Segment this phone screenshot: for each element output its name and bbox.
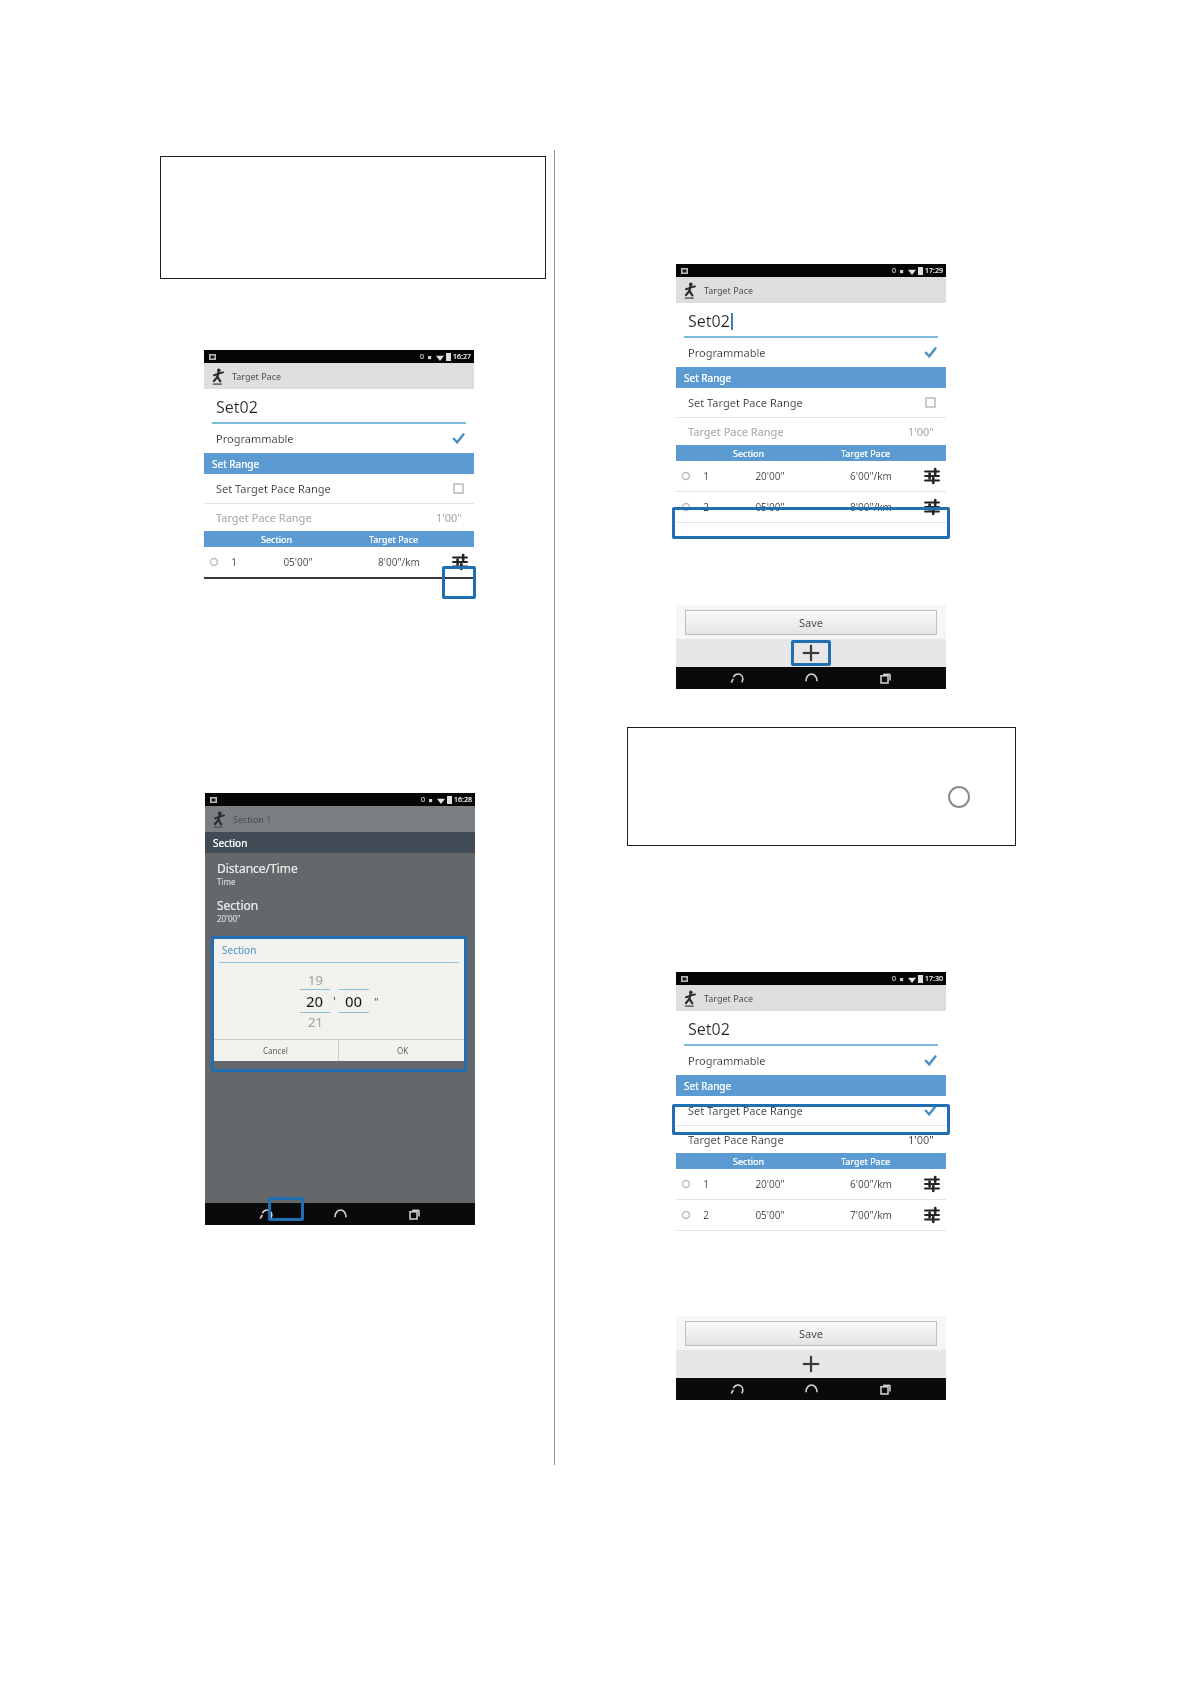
staticText: Target Pace Range xyxy=(688,1132,784,1147)
staticText: " xyxy=(374,994,379,1009)
staticText: Target Pace xyxy=(232,370,282,382)
staticText: Target Pace xyxy=(704,284,754,296)
staticText: Target Pace Range xyxy=(688,424,784,439)
staticText: Section 1 xyxy=(233,813,272,825)
staticText: Save xyxy=(799,615,824,630)
button[interactable]: Add section xyxy=(799,641,823,665)
button[interactable]: Target Pace Range xyxy=(676,1126,946,1153)
staticText: 16:28 xyxy=(454,795,472,805)
button[interactable]: 1 xyxy=(676,1169,946,1199)
staticText: Section xyxy=(222,943,257,957)
button[interactable]: Edit section xyxy=(452,554,468,570)
staticText: 0 xyxy=(892,266,897,276)
staticText: 6'00"/km xyxy=(818,469,924,483)
button[interactable]: Target Pace Range xyxy=(676,418,946,445)
staticText: Set Target Pace Range xyxy=(688,395,803,410)
staticText: Set Target Pace Range xyxy=(216,481,331,496)
staticText: Target Pace Range xyxy=(216,510,312,525)
staticText: Section xyxy=(217,897,259,913)
staticText: OK xyxy=(397,1045,409,1056)
button[interactable]: Edit section xyxy=(924,1207,940,1223)
staticText: 6'00"/km xyxy=(818,1177,924,1191)
staticText: Set02 xyxy=(688,1018,730,1040)
button[interactable]: Save xyxy=(685,610,937,635)
staticText: 05'00" xyxy=(722,500,818,514)
staticText: 16:27 xyxy=(453,352,471,362)
staticText: Set Range xyxy=(684,1079,732,1093)
staticText: 17:30 xyxy=(925,974,943,984)
button[interactable]: Programmable xyxy=(676,338,946,367)
staticText: 1 xyxy=(218,555,250,569)
button[interactable]: Cancel xyxy=(212,1040,338,1061)
button[interactable]: Target Pace Range xyxy=(204,504,474,531)
button[interactable]: OK xyxy=(339,1040,466,1061)
staticText: Target Pace xyxy=(335,533,452,545)
button[interactable]: 1 xyxy=(204,547,474,577)
button[interactable]: Programmable xyxy=(204,424,474,453)
staticText: Time xyxy=(217,876,236,887)
staticText: 20'00" xyxy=(217,913,241,924)
staticText: Section xyxy=(690,447,807,459)
button[interactable]: Set Target Pace Range xyxy=(204,474,474,503)
staticText: 1 xyxy=(690,1177,722,1191)
staticText: Programmable xyxy=(688,345,766,360)
button[interactable]: 2 xyxy=(676,492,946,522)
staticText: Target Pace xyxy=(807,1155,924,1167)
staticText: Set Target Pace Range xyxy=(688,1103,803,1118)
staticText: Cancel xyxy=(263,1045,288,1056)
staticText: 0 xyxy=(420,352,425,362)
staticText: Programmable xyxy=(688,1053,766,1068)
button[interactable]: Programmable xyxy=(676,1046,946,1075)
staticText: 0 xyxy=(892,974,897,984)
button[interactable]: Edit section xyxy=(924,1176,940,1192)
staticText: 7'00"/km xyxy=(818,1208,924,1222)
staticText: 17:29 xyxy=(925,266,943,276)
button[interactable]: Recents xyxy=(872,667,898,689)
button[interactable]: 2 xyxy=(676,1200,946,1230)
staticText: 21 xyxy=(308,1013,323,1031)
staticText: 2 xyxy=(690,500,722,514)
button[interactable]: Recents xyxy=(401,1203,427,1225)
staticText: ' xyxy=(333,993,336,1009)
staticText: Set02 xyxy=(688,310,730,332)
button[interactable]: Back xyxy=(724,667,750,689)
staticText: Section xyxy=(213,836,248,850)
button[interactable]: Home xyxy=(327,1203,353,1225)
staticText: 1'00" xyxy=(908,1132,934,1147)
staticText: Target Pace xyxy=(807,447,924,459)
staticText: 00 xyxy=(345,991,363,1011)
button[interactable]: Save xyxy=(685,1321,937,1346)
button[interactable]: Back xyxy=(253,1203,279,1225)
staticText: Set Range xyxy=(212,457,260,471)
staticText: 05'00" xyxy=(722,1208,818,1222)
staticText: 8'00"/km xyxy=(346,555,452,569)
staticText: Set Range xyxy=(684,371,732,385)
button[interactable]: Edit section xyxy=(924,499,940,515)
staticText: 1'00" xyxy=(436,510,462,525)
staticText: Save xyxy=(799,1326,824,1341)
button[interactable]: Back xyxy=(724,1378,750,1400)
button[interactable]: Home xyxy=(798,667,824,689)
button[interactable]: Set Target Pace Range xyxy=(676,388,946,417)
staticText: 0 xyxy=(421,795,426,805)
staticText: 19 xyxy=(308,971,323,989)
staticText: 8'00"/km xyxy=(818,500,924,514)
staticText: Section xyxy=(218,533,335,545)
staticText: 1 xyxy=(690,469,722,483)
staticText: Set02 xyxy=(216,396,258,418)
staticText: Target Pace xyxy=(704,992,754,1004)
staticText: Programmable xyxy=(216,431,294,446)
button[interactable]: Home xyxy=(798,1378,824,1400)
button[interactable]: Add section xyxy=(799,1352,823,1376)
staticText: Section xyxy=(690,1155,807,1167)
staticText: 2 xyxy=(690,1208,722,1222)
button[interactable]: Set Target Pace Range xyxy=(676,1096,946,1125)
staticText: 05'00" xyxy=(250,555,346,569)
staticText: 1'00" xyxy=(908,424,934,439)
button[interactable]: Edit section xyxy=(924,468,940,484)
button[interactable]: Recents xyxy=(872,1378,898,1400)
staticText: 20'00" xyxy=(722,1177,818,1191)
staticText: Distance/Time xyxy=(217,860,298,876)
staticText: 20 xyxy=(306,991,324,1011)
button[interactable]: 1 xyxy=(676,461,946,491)
